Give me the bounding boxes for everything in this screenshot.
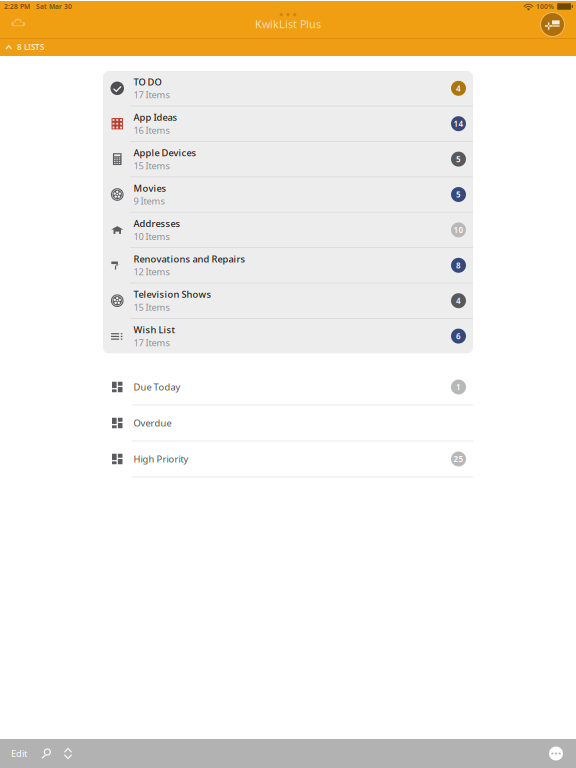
button[interactable]: New list bbox=[540, 12, 565, 37]
staticText: 14 bbox=[453, 118, 463, 129]
staticText: 5 bbox=[456, 189, 461, 200]
button[interactable]: iCloud sync bbox=[0, 12, 26, 27]
staticText: App Ideas bbox=[133, 111, 177, 123]
staticText: KwikList Plus bbox=[255, 17, 321, 31]
staticText: Overdue bbox=[133, 417, 171, 429]
staticText: 17 Items bbox=[133, 336, 169, 349]
button[interactable]: TO DO bbox=[103, 71, 473, 106]
staticText: 12 Items bbox=[133, 266, 169, 278]
staticText: Wish List bbox=[133, 323, 175, 336]
staticText: 25 bbox=[453, 454, 463, 464]
staticText: 15 Items bbox=[133, 301, 169, 313]
button[interactable]: More bbox=[544, 739, 568, 768]
staticText: 9 Items bbox=[133, 195, 164, 207]
staticText: Television Shows bbox=[133, 288, 211, 300]
button[interactable]: Wish List bbox=[103, 319, 473, 353]
button[interactable]: Edit bbox=[0, 739, 35, 768]
staticText: 17 Items bbox=[133, 88, 169, 101]
staticText: 2:28 PM bbox=[4, 2, 30, 11]
staticText: TO DO bbox=[133, 76, 161, 88]
button[interactable]: Search bbox=[35, 739, 57, 768]
staticText: 100% bbox=[536, 2, 554, 11]
staticText: 16 Items bbox=[133, 124, 169, 136]
button[interactable]: Addresses bbox=[103, 213, 473, 248]
staticText: High Priority bbox=[133, 453, 188, 465]
button[interactable]: Apple Devices bbox=[103, 142, 473, 177]
staticText: 4 bbox=[456, 295, 461, 306]
button[interactable]: Sort bbox=[57, 739, 79, 768]
staticText: Addresses bbox=[133, 217, 180, 230]
button[interactable]: High Priority bbox=[103, 441, 473, 477]
staticText: 10 Items bbox=[133, 230, 169, 243]
staticText: Movies bbox=[133, 182, 166, 194]
button[interactable]: Television Shows bbox=[103, 283, 473, 319]
staticText: 5 bbox=[456, 154, 461, 164]
staticText: 10 bbox=[453, 225, 463, 235]
staticText: 8 LISTS bbox=[17, 42, 44, 52]
staticText: 15 Items bbox=[133, 159, 169, 172]
staticText: 4 bbox=[456, 83, 461, 94]
button[interactable]: Renovations and Repairs bbox=[103, 248, 473, 283]
staticText: Apple Devices bbox=[133, 146, 196, 159]
staticText: Due Today bbox=[133, 381, 180, 393]
button[interactable]: App Ideas bbox=[103, 106, 473, 142]
staticText: Renovations and Repairs bbox=[133, 253, 245, 265]
button[interactable]: Overdue bbox=[103, 405, 473, 441]
button[interactable]: Due Today bbox=[103, 369, 473, 405]
staticText: 6 bbox=[456, 331, 461, 341]
staticText: Edit bbox=[11, 747, 27, 760]
staticText: 8 bbox=[456, 260, 461, 271]
staticText: 1 bbox=[456, 382, 461, 392]
staticText: Sat Mar 30 bbox=[36, 2, 72, 11]
button[interactable]: Movies bbox=[103, 177, 473, 213]
